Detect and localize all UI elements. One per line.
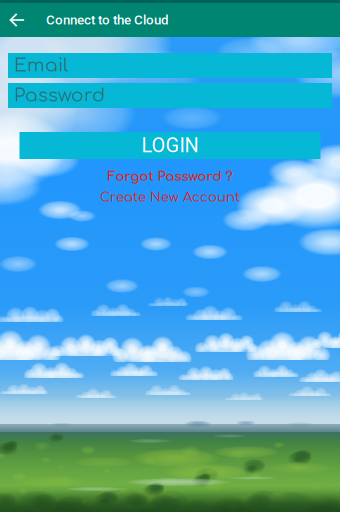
staticText: Connect to the Cloud [46, 12, 169, 28]
button[interactable]: Create New Account [8, 190, 332, 205]
button[interactable]: Back [0, 3, 33, 37]
button[interactable]: Forgot Password ? [8, 169, 332, 184]
staticText: Email [14, 55, 68, 76]
staticText: LOGIN [141, 134, 198, 157]
staticText: Create New Account [100, 190, 240, 205]
button[interactable]: LOGIN [19, 132, 320, 159]
staticText: Forgot Password ? [107, 169, 232, 184]
staticText: Password [14, 85, 105, 106]
